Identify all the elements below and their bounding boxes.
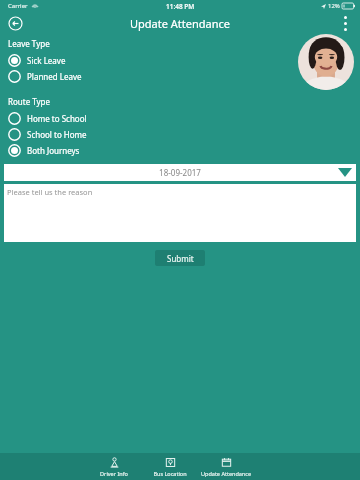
staticText: Carrier	[8, 2, 28, 10]
button[interactable]: Submit	[155, 250, 205, 266]
staticText: Please tell us the reason	[7, 187, 93, 197]
button[interactable]: Both Journeys	[0, 142, 360, 158]
staticText: Submit	[167, 253, 194, 264]
staticText: Leave Type	[8, 38, 50, 49]
staticText: Both Journeys	[27, 145, 80, 156]
button[interactable]: Sick Leave	[0, 52, 360, 68]
staticText: 18-09-2017	[159, 167, 201, 178]
staticText: Bus Location	[153, 470, 187, 477]
staticText: Sick Leave	[27, 55, 66, 66]
button[interactable]: More options	[334, 12, 356, 34]
button[interactable]: Driver Info	[86, 453, 142, 480]
button[interactable]: Profile photo	[298, 34, 354, 90]
button[interactable]: Back	[4, 12, 26, 34]
button[interactable]: Please tell us the reason	[4, 184, 356, 242]
button[interactable]: Update Attendance	[198, 453, 254, 480]
button[interactable]: 18-09-2017	[4, 164, 356, 181]
staticText: School to Home	[27, 129, 87, 140]
staticText: 11:48 PM	[166, 2, 195, 11]
staticText: Update Attendance	[201, 470, 251, 477]
button[interactable]: Home to School	[0, 110, 360, 126]
button[interactable]: Planned Leave	[0, 68, 360, 84]
button[interactable]: Bus Location	[142, 453, 198, 480]
staticText: Driver Info	[100, 470, 128, 477]
button[interactable]: School to Home	[0, 126, 360, 142]
staticText: Planned Leave	[27, 71, 82, 82]
staticText: Update Attendance	[130, 16, 230, 31]
staticText: 12%	[328, 2, 340, 10]
staticText: Route Type	[8, 96, 51, 107]
staticText: Home to School	[27, 113, 87, 124]
